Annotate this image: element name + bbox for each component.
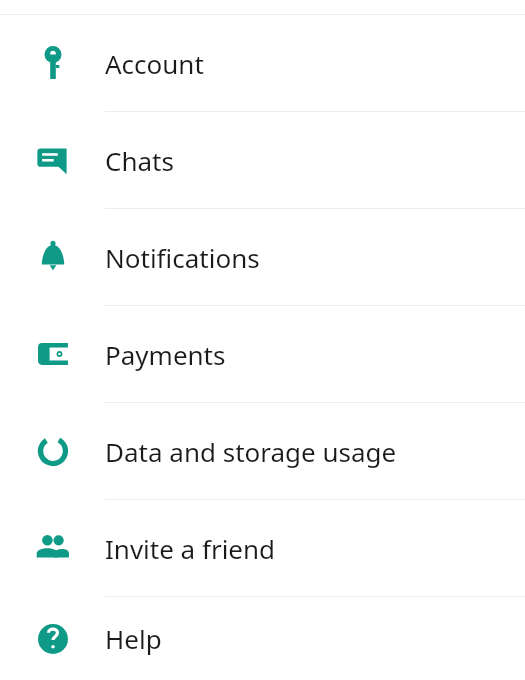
staticText: Chats xyxy=(105,143,174,178)
staticText: Data and storage usage xyxy=(105,434,397,469)
staticText: Help xyxy=(105,621,162,656)
button[interactable]: Payments xyxy=(0,306,525,402)
staticText: Payments xyxy=(105,337,226,372)
button[interactable]: Data and storage usage xyxy=(0,403,525,499)
staticText: Notifications xyxy=(105,240,260,275)
button[interactable]: Chats xyxy=(0,112,525,208)
staticText: Invite a friend xyxy=(105,531,276,566)
button[interactable]: Notifications xyxy=(0,209,525,305)
button[interactable]: Help xyxy=(0,597,525,680)
button[interactable]: Invite a friend xyxy=(0,500,525,596)
button[interactable]: Account xyxy=(0,15,525,111)
staticText: Account xyxy=(105,46,204,81)
